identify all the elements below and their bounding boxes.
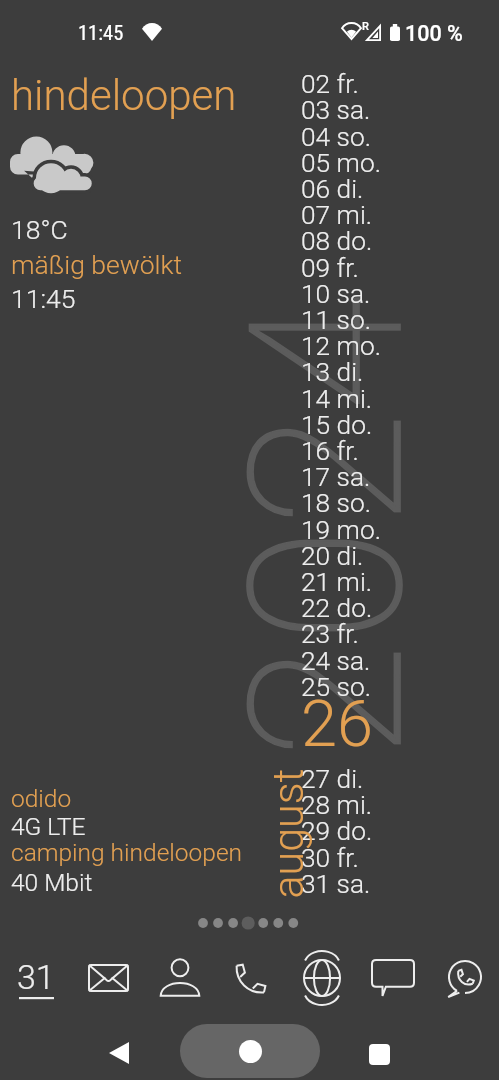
- staticText: 10 sa.: [301, 279, 371, 305]
- staticText: 17 sa.: [301, 462, 371, 488]
- staticText: 18°C: [11, 214, 68, 245]
- button[interactable]: 13 di.: [301, 357, 451, 383]
- button[interactable]: 31 sa.: [301, 869, 451, 895]
- button[interactable]: Contacts: [144, 950, 215, 1006]
- staticText: 15 do.: [301, 410, 373, 436]
- button[interactable]: 15 do.: [301, 410, 451, 436]
- button[interactable]: 27 di.: [301, 764, 451, 790]
- button[interactable]: 24 sa.: [301, 646, 451, 672]
- button[interactable]: 21 mi.: [301, 567, 451, 593]
- staticText: 28 mi.: [301, 790, 373, 816]
- staticText: 30 fr.: [301, 843, 359, 869]
- staticText: 31: [17, 957, 55, 997]
- button[interactable]: 12 mo.: [301, 331, 451, 357]
- staticText: 22 do.: [301, 593, 373, 619]
- staticText: 23 fr.: [301, 619, 359, 645]
- staticText: 06 di.: [301, 174, 364, 200]
- button[interactable]: Recents: [355, 1028, 403, 1076]
- button[interactable]: Phone: [215, 950, 286, 1006]
- button[interactable]: 19 mo.: [301, 515, 451, 541]
- staticText: 05 mo.: [301, 148, 381, 174]
- staticText: 12 mo.: [301, 331, 381, 357]
- button[interactable]: 07 mi.: [301, 200, 451, 226]
- button[interactable]: 17 sa.: [301, 462, 451, 488]
- staticText: 07 mi.: [301, 200, 373, 226]
- staticText: 16 fr.: [301, 436, 359, 462]
- staticText: R: [362, 20, 369, 33]
- staticText: 18 so.: [301, 488, 371, 514]
- button[interactable]: 11 so.: [301, 305, 451, 331]
- staticText: hindeloopen: [11, 71, 237, 120]
- button[interactable]: 20 di.: [301, 541, 451, 567]
- button[interactable]: 26 mo.: [301, 686, 497, 752]
- staticText: 40 Mbit: [11, 868, 93, 897]
- staticText: 11:45: [11, 283, 76, 314]
- staticText: 02 fr.: [301, 69, 359, 95]
- button[interactable]: 22 do.: [301, 593, 451, 619]
- button[interactable]: 29 do.: [301, 816, 451, 842]
- staticText: 2024: [202, 294, 450, 759]
- button[interactable]: 18 so.: [301, 488, 451, 514]
- button[interactable]: 16 fr.: [301, 436, 451, 462]
- staticText: 11 so.: [301, 305, 371, 331]
- staticText: 14 mi.: [301, 384, 373, 410]
- button[interactable]: Browser: [286, 950, 357, 1006]
- button[interactable]: 23 fr.: [301, 619, 451, 645]
- staticText: 100 %: [405, 21, 463, 46]
- staticText: 24 sa.: [301, 646, 371, 672]
- button[interactable]: 02 fr.: [301, 69, 451, 95]
- button[interactable]: 28 mi.: [301, 790, 451, 816]
- staticText: camping hindeloopen: [11, 838, 243, 867]
- staticText: 31 sa.: [301, 869, 371, 895]
- staticText: 2024: [202, 294, 450, 759]
- button[interactable]: Back: [95, 1028, 143, 1076]
- button[interactable]: Home: [180, 1024, 320, 1078]
- button[interactable]: 03 sa.: [301, 95, 451, 121]
- staticText: 08 do.: [301, 226, 373, 252]
- button[interactable]: 09 fr.: [301, 253, 451, 279]
- staticText: 19 mo.: [301, 515, 381, 541]
- staticText: 26 mo.: [301, 686, 497, 752]
- button[interactable]: 30 fr.: [301, 843, 451, 869]
- staticText: 13 di.: [301, 357, 364, 383]
- button[interactable]: 14 mi.: [301, 384, 451, 410]
- button[interactable]: Messages: [357, 950, 428, 1006]
- staticText: 21 mi.: [301, 567, 373, 593]
- button[interactable]: 04 so.: [301, 122, 451, 148]
- button[interactable]: 10 sa.: [301, 279, 451, 305]
- staticText: august: [262, 768, 312, 898]
- staticText: 27 di.: [301, 764, 364, 790]
- staticText: 04 so.: [301, 122, 371, 148]
- button[interactable]: WhatsApp: [428, 950, 499, 1006]
- button[interactable]: 25 so.: [301, 672, 451, 698]
- button[interactable]: 06 di.: [301, 174, 451, 200]
- staticText: odido: [11, 784, 72, 813]
- staticText: 11:45: [78, 21, 124, 45]
- staticText: 4G LTE: [11, 812, 86, 841]
- button[interactable]: Calendar: [0, 950, 72, 1006]
- staticText: 29 do.: [301, 816, 373, 842]
- button[interactable]: 05 mo.: [301, 148, 451, 174]
- staticText: 25 so.: [301, 672, 371, 698]
- button[interactable]: Mail: [72, 950, 144, 1006]
- button[interactable]: 08 do.: [301, 226, 451, 252]
- staticText: 20 di.: [301, 541, 364, 567]
- staticText: 03 sa.: [301, 95, 371, 121]
- staticText: 09 fr.: [301, 253, 359, 279]
- staticText: mäßig bewölkt: [11, 249, 183, 280]
